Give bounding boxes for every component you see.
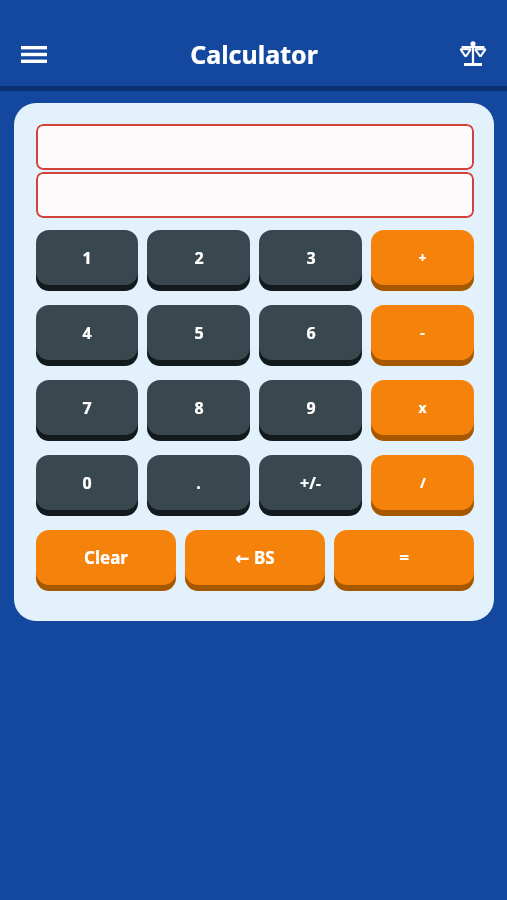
button[interactable]: 6 [259, 305, 362, 360]
staticText: 1 [82, 247, 92, 269]
staticText: / [420, 473, 426, 492]
button[interactable]: 1 [36, 230, 138, 285]
staticText: - [420, 323, 425, 342]
button[interactable] [36, 124, 474, 170]
staticText: 8 [194, 397, 204, 419]
staticText: ← BS [235, 546, 275, 569]
button[interactable]: = [334, 530, 474, 585]
staticText: 6 [306, 322, 316, 344]
button[interactable]: Unit converter [451, 32, 495, 76]
button[interactable]: 7 [36, 380, 138, 435]
staticText: 0 [82, 472, 92, 494]
staticText: 4 [82, 322, 92, 344]
staticText: Calculator [190, 37, 318, 71]
button[interactable]: 8 [147, 380, 250, 435]
button[interactable]: ← BS [185, 530, 325, 585]
button[interactable]: 9 [259, 380, 362, 435]
staticText: 3 [306, 247, 316, 269]
staticText: 2 [194, 247, 204, 269]
button[interactable]: +/- [259, 455, 362, 510]
button[interactable]: - [371, 305, 474, 360]
button[interactable]: 4 [36, 305, 138, 360]
staticText: = [399, 546, 409, 569]
button[interactable]: x [371, 380, 474, 435]
button[interactable]: / [371, 455, 474, 510]
button[interactable]: 3 [259, 230, 362, 285]
button[interactable] [36, 172, 474, 218]
staticText: 5 [194, 322, 204, 344]
button[interactable]: . [147, 455, 250, 510]
staticText: +/- [300, 472, 321, 494]
staticText: Clear [84, 546, 128, 569]
staticText: . [196, 472, 201, 494]
staticText: 7 [82, 397, 92, 419]
staticText: + [418, 248, 427, 267]
button[interactable]: + [371, 230, 474, 285]
staticText: x [418, 398, 427, 417]
staticText: 9 [306, 397, 316, 419]
button[interactable]: 0 [36, 455, 138, 510]
button[interactable]: 5 [147, 305, 250, 360]
button[interactable]: 2 [147, 230, 250, 285]
button[interactable]: Clear [36, 530, 176, 585]
button[interactable]: Menu [12, 32, 56, 76]
